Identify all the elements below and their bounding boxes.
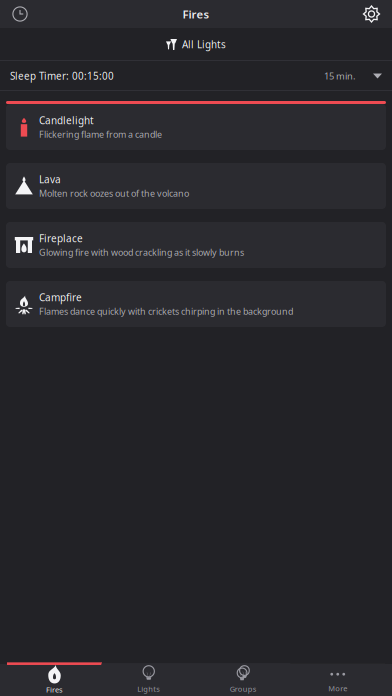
staticText: Fireplace	[39, 232, 83, 245]
staticText: Glowing fire with wood crackling as it s…	[39, 246, 244, 258]
staticText: Groups	[230, 684, 257, 694]
button[interactable]: Groups	[196, 664, 290, 696]
staticText: Flickering flame from a candle	[39, 128, 162, 140]
button[interactable]: All Lights	[0, 28, 392, 61]
button[interactable]: Settings	[351, 0, 392, 28]
staticText: Molten rock oozes out of the volcano	[39, 187, 189, 199]
staticText: Fires	[182, 6, 209, 22]
button[interactable]: More	[290, 664, 385, 696]
staticText: Flames dance quickly with crickets chirp…	[39, 305, 293, 317]
staticText: Fires	[46, 684, 63, 695]
staticText: Sleep Timer: 00:15:00	[10, 69, 114, 83]
button[interactable]: Campfire	[6, 281, 386, 327]
button[interactable]: Candlelight	[6, 101, 386, 150]
button[interactable]: Sleep timer	[0, 0, 40, 28]
staticText: Campfire	[39, 291, 82, 304]
staticText: Lava	[39, 173, 61, 186]
button[interactable]: Fires	[7, 664, 101, 696]
staticText: All Lights	[182, 38, 226, 51]
staticText: 15 min.	[324, 70, 356, 82]
button[interactable]: Fireplace	[6, 222, 386, 268]
button[interactable]: Lava	[6, 163, 386, 209]
button[interactable]: Lights	[101, 664, 196, 696]
staticText: Candlelight	[39, 114, 94, 127]
staticText: Lights	[137, 684, 160, 694]
staticText: More	[328, 683, 347, 693]
button[interactable]: Sleep Timer: 00:15:00	[0, 61, 392, 91]
